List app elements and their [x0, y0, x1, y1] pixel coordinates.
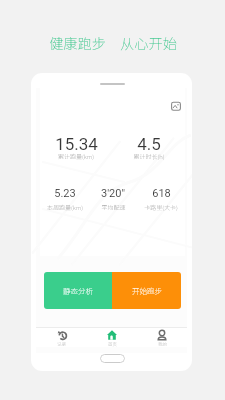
button[interactable]: 开始跑步 — [112, 272, 181, 309]
staticText: 5.23 — [54, 187, 76, 200]
staticText: 618 — [152, 187, 171, 200]
staticText: 本周跑量(km) — [47, 203, 83, 212]
staticText: 开始跑步 — [132, 285, 162, 296]
button[interactable]: 首页 — [87, 327, 137, 347]
staticText: 卡路里(大卡) — [144, 203, 178, 212]
staticText: 静态分析 — [63, 285, 93, 296]
button[interactable]: 静态分析 — [44, 272, 112, 309]
staticText: 健康跑步 从心开始 — [49, 33, 177, 54]
staticText: 3'20" — [101, 187, 125, 200]
staticText: 我的 — [158, 341, 167, 348]
staticText: 4.5 — [137, 134, 161, 154]
staticText: 平均配速 — [101, 203, 126, 212]
staticText: 累计时长(h) — [133, 152, 165, 161]
staticText: 累计跑量(km) — [58, 152, 94, 161]
staticText: 首页 — [108, 341, 117, 348]
staticText: 记录 — [57, 341, 66, 348]
button[interactable]: 记录 — [36, 327, 87, 347]
button[interactable]: 图表 — [171, 101, 181, 111]
button[interactable]: 我的 — [137, 327, 187, 347]
staticText: 15.34 — [55, 134, 98, 154]
